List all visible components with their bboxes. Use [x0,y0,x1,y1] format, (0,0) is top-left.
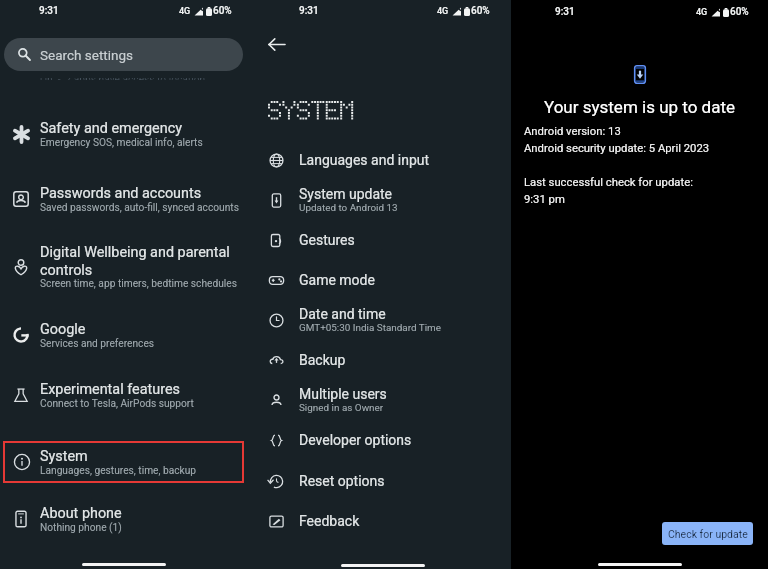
staticText: About phone [40,505,122,522]
staticText: Experimental features [40,381,180,398]
button[interactable]: System [3,441,244,483]
staticText: System update [299,186,393,202]
staticText: Game mode [299,272,375,288]
staticText: Languages and input [299,152,430,168]
staticText: Digital Wellbeing and parental controls [40,244,255,278]
button[interactable]: Date and time [256,301,511,339]
staticText: System [40,448,88,465]
staticText: Languages, gestures, time, backup [40,465,197,477]
staticText: 9:31 [555,6,575,18]
staticText: Passwords and accounts [40,185,202,202]
button[interactable]: Multiple users [256,381,511,419]
button[interactable]: Experimental features [0,371,256,419]
staticText: Signed in as Owner [299,402,384,414]
staticText: Nothing phone (1) [40,522,122,534]
staticText: 60% [730,6,749,18]
staticText: Saved passwords, auto-fill, synced accou… [40,202,239,214]
button[interactable]: Safety and emergency [0,110,256,158]
button[interactable]: Search settings [4,38,243,71]
button[interactable]: Game mode [256,262,511,298]
button[interactable]: About phone [0,495,256,543]
staticText: Feedback [299,513,360,529]
staticText: Android version: 13 [524,125,621,138]
staticText: Google [40,321,86,338]
staticText: Services and preferences [40,338,155,350]
button[interactable]: Check for update [662,522,753,545]
button[interactable]: Backup [256,342,511,378]
staticText: Date and time [299,306,386,322]
button[interactable]: Gestures [256,222,511,258]
button[interactable]: System update [256,181,511,219]
staticText: 4G [437,6,449,17]
staticText: Emergency SOS, medical info, alerts [40,137,203,149]
staticText: Screen time, app timers, bedtime schedul… [40,278,237,290]
staticText: 60% [213,5,232,17]
button[interactable]: Back [262,30,290,58]
staticText: Developer options [299,432,412,448]
staticText: 9:31 [299,5,319,17]
button[interactable]: Google [0,311,256,359]
button[interactable]: Reset options [256,463,511,499]
button[interactable]: Digital Wellbeing and parental controls [0,238,256,296]
staticText: Gestures [299,232,355,248]
staticText: Connect to Tesla, AirPods support [40,398,194,410]
staticText: Updated to Android 13 [299,202,398,214]
staticText: 4G [179,6,191,17]
staticText: Safety and emergency [40,120,183,137]
button[interactable]: Feedback [256,503,511,539]
staticText: Last successful check for update: [524,176,693,189]
button[interactable]: Passwords and accounts [0,175,256,223]
staticText: On - 2 apps have access to location [40,78,206,80]
staticText: Multiple users [299,386,387,402]
staticText: Reset options [299,473,385,489]
staticText: 9:31 [39,5,59,17]
staticText: 9:31 pm [524,193,565,206]
staticText: Your system is up to date [544,97,735,117]
staticText: Search settings [40,47,134,63]
button[interactable]: Languages and input [256,142,511,178]
staticText: Android security update: 5 April 2023 [524,142,710,155]
staticText: Backup [299,352,346,368]
staticText: Check for update [668,528,748,540]
button[interactable]: Developer options [256,422,511,458]
staticText: 4G [696,7,708,18]
staticText: GMT+05:30 India Standard Time [299,322,442,334]
staticText: 60% [471,5,490,17]
